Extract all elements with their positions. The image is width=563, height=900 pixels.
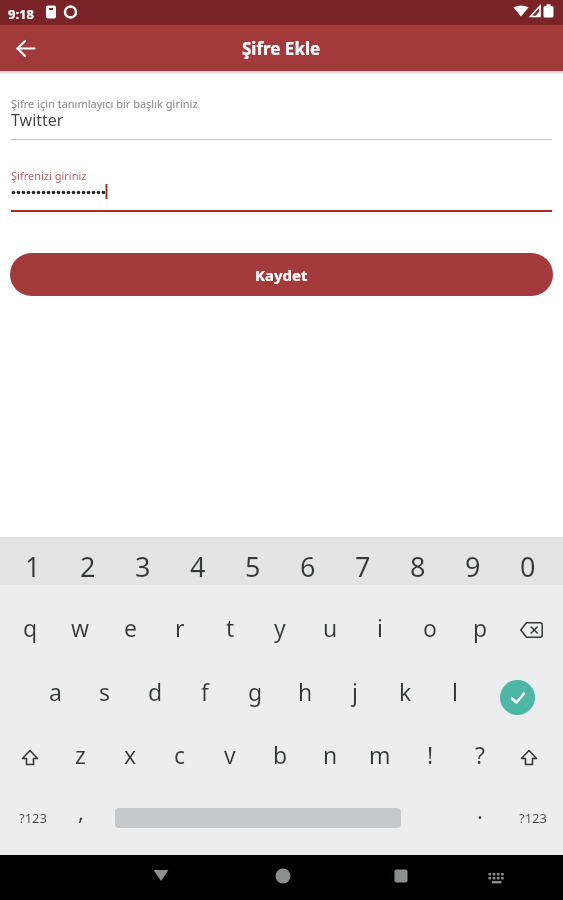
staticText: l	[452, 676, 458, 707]
staticText: 4	[190, 548, 206, 585]
staticText: d	[148, 676, 163, 707]
staticText: t	[226, 612, 235, 643]
button[interactable]: x	[106, 726, 154, 782]
staticText: ?123	[519, 809, 547, 827]
button[interactable]: 9	[446, 542, 500, 590]
staticText: .	[477, 795, 483, 825]
button[interactable]: p	[456, 599, 504, 655]
button[interactable]: b	[256, 726, 304, 782]
button[interactable]: 1	[6, 542, 60, 590]
staticText: Şifre Ekle	[242, 37, 321, 60]
staticText: ?123	[19, 809, 47, 827]
button[interactable]: ,	[57, 783, 105, 839]
staticText: v	[224, 739, 236, 770]
staticText: 0	[520, 548, 536, 585]
button[interactable]: i	[356, 599, 404, 655]
button[interactable]: t	[206, 599, 254, 655]
staticText: 8	[410, 548, 426, 585]
button[interactable]: w	[56, 599, 104, 655]
button[interactable]: n	[306, 726, 354, 782]
button[interactable]: s	[81, 663, 129, 719]
staticText: Şifre için tanımlayıcı bir başlık girini…	[11, 96, 198, 111]
button[interactable]	[505, 730, 553, 786]
button[interactable]: 7	[336, 542, 390, 590]
staticText: i	[377, 612, 383, 643]
button[interactable]: 6	[281, 542, 335, 590]
button[interactable]: z	[56, 726, 104, 782]
staticText: a	[49, 676, 62, 707]
staticText: ,	[78, 796, 84, 826]
staticText: 1	[25, 548, 41, 585]
staticText: w	[71, 612, 90, 643]
staticText: 3	[135, 548, 151, 585]
button[interactable]: 8	[391, 542, 445, 590]
button[interactable]: ?	[456, 726, 504, 782]
button[interactable]: a	[31, 663, 79, 719]
button[interactable]: ?123	[5, 790, 61, 846]
staticText: f	[201, 676, 209, 707]
button[interactable]	[493, 669, 541, 725]
staticText: e	[124, 612, 137, 643]
button[interactable]: f	[181, 663, 229, 719]
staticText: n	[323, 739, 338, 770]
staticText: 9:18	[8, 5, 34, 23]
button[interactable]: e	[106, 599, 154, 655]
button[interactable]: k	[381, 663, 429, 719]
button[interactable]: l	[431, 663, 479, 719]
staticText: b	[273, 739, 288, 770]
staticText: y	[274, 612, 286, 643]
button[interactable]: 3	[116, 542, 170, 590]
button[interactable]: q	[6, 599, 54, 655]
staticText: s	[99, 676, 111, 707]
staticText: r	[175, 612, 185, 643]
staticText: o	[423, 612, 437, 643]
staticText: Şifrenizi giriniz	[11, 168, 87, 183]
staticText: x	[124, 739, 137, 770]
button[interactable]: 2	[61, 542, 115, 590]
staticText: 7	[355, 548, 371, 585]
button[interactable]: .	[456, 782, 504, 838]
button[interactable]: 4	[171, 542, 225, 590]
button[interactable]: y	[256, 599, 304, 655]
button[interactable]: m	[356, 726, 404, 782]
button[interactable]: j	[331, 663, 379, 719]
button[interactable]	[140, 855, 184, 900]
staticText: !	[427, 739, 434, 770]
button[interactable]: 0	[501, 542, 555, 590]
staticText: q	[23, 612, 38, 643]
button[interactable]	[507, 602, 556, 658]
button[interactable]: g	[231, 663, 279, 719]
button[interactable]	[475, 855, 515, 900]
button[interactable]: u	[306, 599, 354, 655]
staticText: j	[352, 676, 358, 707]
staticText: Kaydet	[255, 265, 308, 285]
staticText: 2	[80, 548, 96, 585]
staticText: m	[369, 739, 391, 770]
button[interactable]: v	[206, 726, 254, 782]
button[interactable]	[6, 730, 54, 786]
button[interactable]	[379, 855, 423, 900]
button[interactable]: ?123	[505, 790, 561, 846]
button[interactable]	[8, 30, 44, 66]
staticText: c	[174, 739, 186, 770]
button[interactable]: c	[156, 726, 204, 782]
staticText: 6	[300, 548, 316, 585]
staticText: u	[323, 612, 338, 643]
button[interactable]: r	[156, 599, 204, 655]
button[interactable]: o	[406, 599, 454, 655]
staticText: z	[75, 739, 86, 770]
button[interactable]	[261, 855, 305, 900]
button[interactable]: d	[131, 663, 179, 719]
staticText: 5	[245, 548, 261, 585]
staticText: g	[248, 676, 263, 707]
button[interactable]: !	[406, 726, 454, 782]
staticText: p	[473, 612, 488, 643]
staticText: k	[399, 676, 412, 707]
button[interactable]: Kaydet	[10, 253, 553, 296]
staticText: 9	[465, 548, 481, 585]
staticText: h	[298, 676, 313, 707]
staticText: ?	[475, 739, 485, 770]
button[interactable]: h	[281, 663, 329, 719]
button[interactable]: 5	[226, 542, 280, 590]
